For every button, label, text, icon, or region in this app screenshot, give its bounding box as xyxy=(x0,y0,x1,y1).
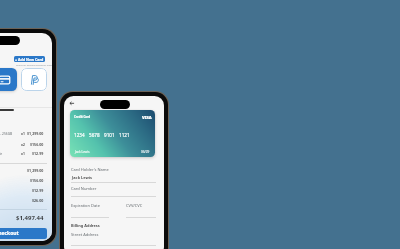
staticText: x1 xyxy=(21,131,25,135)
staticText: Apple iPhone 15 Pro - 256GB xyxy=(0,131,13,135)
staticText: USB-C Charging Cable xyxy=(0,151,3,155)
staticText: Credit Card xyxy=(74,115,91,119)
staticText: VISA xyxy=(142,115,152,120)
staticText: $12.99 xyxy=(32,188,44,193)
staticText: Checkout xyxy=(0,230,19,237)
staticText: Jack Lewis xyxy=(75,150,90,154)
staticText: $1,497.44 xyxy=(16,214,44,222)
staticText: Billing Address xyxy=(71,223,100,228)
staticText: $1,299.00 xyxy=(27,168,44,173)
staticText: $26.00 xyxy=(32,198,44,203)
button[interactable]: + Add New Card xyxy=(14,56,45,62)
staticText: Street Address xyxy=(71,232,99,237)
staticText: Jack Lewis xyxy=(72,175,92,180)
staticText: 1234 xyxy=(74,132,85,138)
staticText: Select an existing payment method xyxy=(16,63,52,66)
staticText: CVV/CVC xyxy=(126,203,143,208)
staticText: + Add New Card xyxy=(15,57,44,62)
button[interactable]: Back xyxy=(68,99,76,107)
staticText: x2 xyxy=(21,142,25,146)
button[interactable]: Checkout xyxy=(0,228,47,239)
button[interactable]: Payment method xyxy=(0,68,17,91)
staticText: $156.00 xyxy=(30,178,44,183)
button[interactable]: Payment method xyxy=(21,68,47,91)
staticText: 5678 xyxy=(89,132,100,138)
staticText: x1 xyxy=(21,151,25,155)
staticText: $12.99 xyxy=(32,151,44,156)
staticText: 1121 xyxy=(119,132,130,138)
staticText: 06/29 xyxy=(141,150,150,154)
button[interactable]: Credit card xyxy=(70,110,155,157)
staticText: Card Holder's Name xyxy=(71,167,109,172)
staticText: Card Number xyxy=(71,186,97,191)
staticText: $1,299.00 xyxy=(27,131,44,136)
staticText: Expiration Date xyxy=(71,203,100,208)
staticText: 9101 xyxy=(104,132,115,138)
staticText: $156.00 xyxy=(30,142,44,147)
